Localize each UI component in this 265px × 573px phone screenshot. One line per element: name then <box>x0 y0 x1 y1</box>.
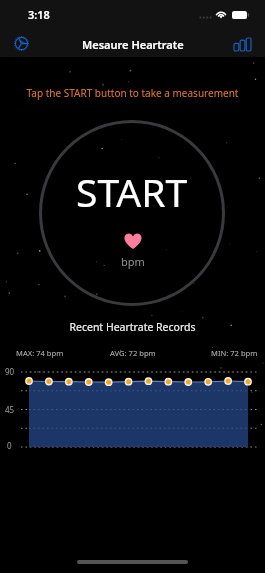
staticText: Mesaure Heartrate <box>82 37 184 52</box>
staticText: 0 <box>7 440 12 451</box>
staticText: MAX: 74 bpm <box>16 348 64 358</box>
staticText: 45 <box>5 404 15 415</box>
staticText: 90 <box>5 366 15 377</box>
button[interactable]: START <box>39 120 225 306</box>
staticText: MIN: 72 bpm <box>211 348 258 358</box>
staticText: 3:18 <box>28 7 50 22</box>
button[interactable]: Measure <box>7 29 35 57</box>
staticText: START <box>76 165 188 218</box>
staticText: bpm <box>121 254 145 269</box>
staticText: Tap the START button to take a measureme… <box>0 86 265 100</box>
staticText: Recent Heartrate Records <box>0 320 265 334</box>
button[interactable]: History <box>228 30 256 58</box>
staticText: AVG: 72 bpm <box>110 348 156 358</box>
